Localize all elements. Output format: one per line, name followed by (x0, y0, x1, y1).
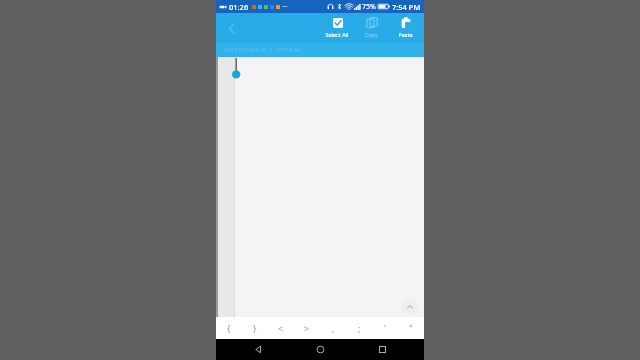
staticText: 7:54 PM (392, 2, 421, 12)
button[interactable]: " (398, 317, 424, 339)
button[interactable]: Recents (362, 339, 402, 360)
staticText: 75% (362, 2, 376, 12)
staticText: ' (384, 322, 387, 334)
staticText: \GCET00424 (224, 46, 259, 54)
staticText: ··· (282, 2, 288, 12)
button[interactable]: > (294, 317, 320, 339)
button[interactable]: ; (346, 317, 372, 339)
button[interactable]: Home (300, 339, 340, 360)
staticText: | UTF-8 (267, 46, 293, 54)
staticText: < (278, 322, 284, 334)
button[interactable]: ' (372, 317, 398, 339)
button[interactable]: { (216, 317, 242, 339)
staticText: " (409, 322, 413, 334)
staticText: } (253, 322, 257, 334)
staticText: 01:26 (229, 2, 249, 12)
staticText: Paste (398, 31, 413, 38)
button[interactable]: Select All (320, 13, 354, 43)
staticText: > (304, 322, 310, 334)
button[interactable]: Copy (354, 13, 388, 43)
button[interactable]: Paste (388, 13, 422, 43)
button[interactable]: Scroll to top (401, 298, 418, 315)
staticText: Copy (365, 31, 378, 38)
button[interactable]: Back (220, 17, 242, 39)
button[interactable]: } (242, 317, 268, 339)
staticText: , (332, 322, 335, 334)
staticText: Select All (325, 31, 349, 38)
button[interactable]: , (320, 317, 346, 339)
button[interactable]: Back (238, 339, 278, 360)
staticText: { (227, 322, 231, 334)
staticText: txt (293, 47, 301, 54)
button[interactable]: < (268, 317, 294, 339)
staticText: ; (358, 322, 361, 334)
staticText: .txt (259, 47, 267, 54)
